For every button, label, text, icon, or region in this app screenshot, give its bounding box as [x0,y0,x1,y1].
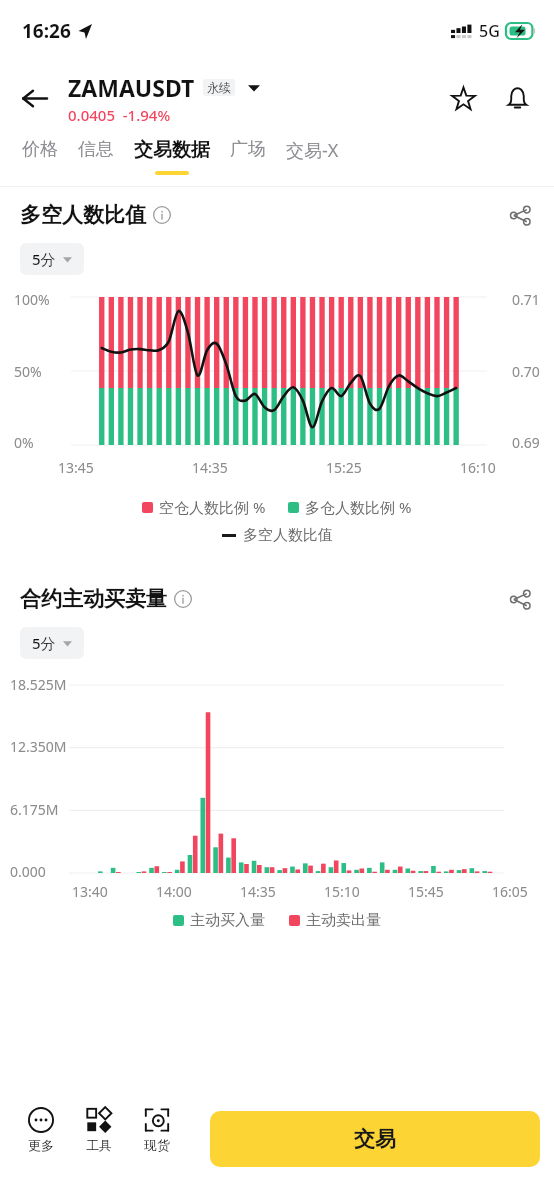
staticText: 0% [14,433,34,452]
staticText: 空仓人数比例 % [159,497,266,517]
staticText: 14:00 [156,882,192,901]
staticText: 5G [479,20,500,42]
staticText: 广场 [230,138,266,161]
staticText: 100% [14,290,50,309]
button[interactable]: 信息 [68,134,124,170]
staticText: 信息 [78,138,114,161]
staticText: 5分 [32,633,56,653]
staticText: 多仓人数比例 % [305,497,412,517]
staticText: 13:40 [72,882,108,901]
staticText: 交易数据 [134,138,210,162]
button[interactable]: Info [153,206,171,224]
staticText: 13:45 [58,458,94,477]
staticText: 16:05 [492,882,528,901]
staticText: 15:10 [324,882,360,901]
button[interactable]: 更多 [12,1105,70,1155]
staticText: 0.0405 -1.94% [68,105,171,125]
staticText: 15:25 [326,458,362,477]
staticText: 12.350M [10,737,67,756]
button[interactable]: 交易 [210,1111,540,1167]
staticText: 16:26 [22,18,71,44]
button[interactable]: 工具 [70,1105,128,1155]
button[interactable]: Share [498,577,542,621]
staticText: 14:35 [192,458,228,477]
staticText: 工具 [86,1137,112,1153]
button[interactable]: 5分 [20,243,84,275]
staticText: 多空人数比值 [243,526,333,545]
button[interactable]: 广场 [220,134,276,170]
staticText: 6.175M [10,800,59,819]
staticText: 16:10 [460,458,496,477]
staticText: 现货 [144,1137,170,1153]
staticText: 0.71 [512,290,540,309]
staticText: 0.70 [512,362,540,381]
staticText: 多空人数比值 [20,202,146,228]
button[interactable]: Select contract [243,77,265,99]
button[interactable]: Info [174,590,192,608]
staticText: 价格 [22,138,58,161]
staticText: 15:45 [408,882,444,901]
staticText: 合约主动买卖量 [20,586,167,612]
button[interactable]: 5分 [20,627,84,659]
button[interactable]: Back [8,72,60,124]
staticText: 5分 [32,249,56,269]
staticText: 18.525M [10,675,67,694]
staticText: 更多 [28,1137,54,1153]
staticText: 主动卖出量 [306,911,381,930]
staticText: 交易-X [286,138,339,163]
button[interactable]: 价格 [12,134,68,170]
staticText: 0.69 [512,433,540,452]
button[interactable]: 交易-X [276,134,349,172]
staticText: 交易 [354,1126,396,1152]
staticText: 主动买入量 [190,911,265,930]
staticText: ZAMAUSDT [68,72,195,103]
staticText: 0.000 [10,862,46,881]
button[interactable]: 现货 [128,1105,186,1155]
button[interactable]: Notifications [494,75,540,121]
button[interactable]: Favorite [440,75,486,121]
button[interactable]: Share [498,193,542,237]
staticText: 50% [14,362,42,381]
button[interactable]: 交易数据 [124,134,220,175]
staticText: 永续 [207,80,231,95]
staticText: 14:35 [240,882,276,901]
